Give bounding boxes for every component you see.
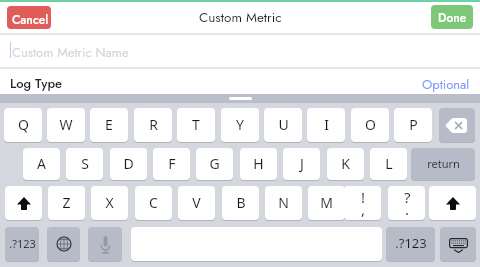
staticText: C [149,193,158,212]
button[interactable]: Shift [429,186,476,220]
staticText: , [361,199,366,219]
button[interactable]: C [135,186,172,220]
button[interactable]: X [91,186,128,220]
button[interactable]: S [66,148,103,180]
staticText: D [123,154,134,173]
staticText: M [320,193,333,212]
staticText: ! [361,187,366,207]
staticText: R [149,115,158,134]
staticText: .?123 [395,234,427,252]
staticText: Cancel [12,11,49,28]
button[interactable]: L [370,148,407,180]
staticText: Done [438,9,467,26]
staticText: L [385,154,393,173]
staticText: Optional [422,75,470,94]
button[interactable]: Done [431,5,473,29]
staticText: Y [236,115,244,134]
button[interactable]: Log Type [0,68,480,94]
button[interactable]: E [90,108,128,142]
button[interactable]: N [265,186,302,220]
button[interactable]: V [178,186,215,220]
button[interactable]: Custom Metric Name [0,35,480,67]
button[interactable]: Hide keyboard [440,227,476,261]
staticText: F [168,154,176,173]
staticText: Log Type [10,74,63,93]
staticText: U [278,115,289,134]
button[interactable]: Q [4,108,42,142]
staticText: O [365,115,376,134]
staticText: Z [62,193,71,212]
staticText: X [105,193,114,212]
staticText: T [192,115,200,134]
staticText: E [105,115,113,134]
button[interactable]: T [177,108,215,142]
button[interactable]: .?123 [386,227,435,261]
staticText: H [253,154,264,173]
staticText: A [37,154,46,173]
button[interactable]: F [153,148,190,180]
staticText: P [409,115,418,134]
staticText: ? [404,187,411,207]
button[interactable]: R [134,108,172,142]
staticText: S [81,154,89,173]
staticText: Custom Metric Name [12,43,129,62]
button[interactable]: I [307,108,345,142]
button[interactable]: Backspace [439,108,475,142]
button[interactable]: Voice input [88,227,122,261]
button[interactable]: U [264,108,302,142]
button[interactable]: A [23,148,60,180]
staticText: return [427,156,460,171]
button[interactable]: O [351,108,389,142]
button[interactable]: B [222,186,259,220]
staticText: I [324,115,329,134]
button[interactable]: ! [344,186,381,220]
staticText: Custom Metric [199,8,282,28]
staticText: J [300,154,304,173]
staticText: K [341,154,350,173]
staticText: W [59,115,73,134]
button[interactable]: D [110,148,147,180]
button[interactable]: return [411,148,475,180]
button[interactable]: H [240,148,277,180]
staticText: N [278,193,289,212]
button[interactable]: Cancel [7,6,51,29]
button[interactable]: Y [221,108,259,142]
button[interactable]: Change keyboard [47,227,80,261]
button[interactable]: J [283,148,320,180]
button[interactable]: M [308,186,345,220]
button[interactable]: Z [48,186,85,220]
button[interactable]: Shift [5,186,42,220]
staticText: .?123 [9,236,36,251]
staticText: . [405,199,410,219]
button[interactable]: P [394,108,432,142]
staticText: G [209,154,220,173]
button[interactable]: G [196,148,233,180]
button[interactable]: K [327,148,364,180]
button[interactable]: ? [388,186,425,220]
button[interactable]: .?123 [5,227,39,261]
staticText: V [192,193,201,212]
staticText: Q [18,115,29,134]
staticText: B [236,193,246,212]
button[interactable]: W [47,108,85,142]
